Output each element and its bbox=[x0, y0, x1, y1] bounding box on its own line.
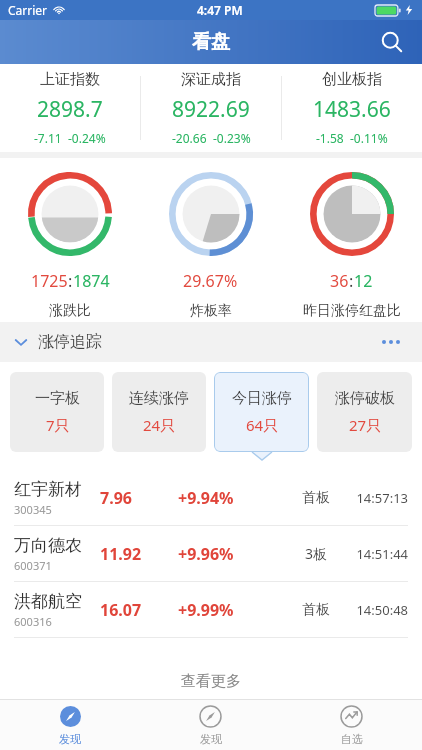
button[interactable]: 红宇新材 bbox=[14, 470, 408, 525]
staticText: 一字板 bbox=[35, 389, 80, 408]
staticText: 36 bbox=[330, 270, 349, 292]
staticText: : bbox=[68, 270, 73, 292]
staticText: -0.23% bbox=[213, 130, 251, 146]
button[interactable]: 涨停追踪 bbox=[14, 322, 408, 362]
staticText: 24只 bbox=[143, 415, 176, 435]
button[interactable]: 1725 bbox=[0, 170, 140, 322]
staticText: 发现 bbox=[59, 732, 81, 746]
staticText: -1.58 bbox=[316, 130, 344, 146]
button[interactable]: 发现 bbox=[140, 700, 281, 750]
staticText: 万向德农 bbox=[14, 535, 82, 556]
staticText: 创业板指 bbox=[322, 70, 382, 89]
staticText: -7.11 bbox=[34, 130, 62, 146]
staticText: 涨停破板 bbox=[335, 389, 395, 408]
staticText: 29.67% bbox=[183, 270, 238, 292]
staticText: 今日涨停 bbox=[232, 389, 292, 408]
staticText: 12 bbox=[354, 270, 373, 292]
staticText: 4:47 PM bbox=[197, 2, 243, 18]
button[interactable]: 深证成指 bbox=[141, 64, 281, 152]
staticText: 洪都航空 bbox=[14, 591, 82, 612]
button[interactable]: 自选 bbox=[281, 700, 422, 750]
staticText: 首板 bbox=[292, 601, 340, 619]
staticText: 1874 bbox=[73, 270, 110, 292]
staticText: 1483.66 bbox=[313, 95, 391, 124]
staticText: : bbox=[349, 270, 354, 292]
staticText: Carrier bbox=[8, 2, 48, 18]
staticText: +9.99% bbox=[178, 599, 292, 621]
staticText: 涨停追踪 bbox=[38, 332, 102, 352]
button[interactable]: 36 bbox=[281, 170, 422, 322]
staticText: 11.92 bbox=[100, 543, 178, 565]
staticText: 7.96 bbox=[100, 487, 178, 509]
button[interactable]: 洪都航空 bbox=[14, 582, 408, 637]
staticText: 连续涨停 bbox=[129, 389, 189, 408]
staticText: 红宇新材 bbox=[14, 479, 82, 500]
button[interactable]: 涨停破板 bbox=[317, 372, 412, 452]
button[interactable]: 创业板指 bbox=[282, 64, 422, 152]
staticText: 14:57:13 bbox=[340, 489, 408, 507]
staticText: 14:51:44 bbox=[340, 545, 408, 563]
button[interactable]: 29.67% bbox=[140, 170, 281, 322]
staticText: 发现 bbox=[200, 732, 222, 746]
button[interactable]: 发现 bbox=[0, 700, 140, 750]
staticText: 16.07 bbox=[100, 599, 178, 621]
staticText: 1725 bbox=[31, 270, 68, 292]
button[interactable]: 一字板 bbox=[10, 372, 104, 452]
staticText: 8922.69 bbox=[172, 95, 250, 124]
staticText: 300345 bbox=[14, 502, 52, 517]
staticText: 深证成指 bbox=[181, 70, 241, 89]
staticText: 2898.7 bbox=[37, 95, 103, 124]
staticText: 64只 bbox=[246, 415, 279, 435]
button[interactable]: More options bbox=[374, 325, 408, 359]
staticText: 昨日涨停红盘比 bbox=[303, 302, 401, 320]
staticText: 600371 bbox=[14, 558, 52, 573]
staticText: 上证指数 bbox=[40, 70, 100, 89]
button[interactable]: 查看更多 bbox=[0, 663, 422, 699]
button[interactable]: 连续涨停 bbox=[112, 372, 206, 452]
staticText: 炸板率 bbox=[190, 302, 232, 320]
staticText: 14:50:48 bbox=[340, 601, 408, 619]
button[interactable]: 上证指数 bbox=[0, 64, 140, 152]
staticText: 27只 bbox=[349, 415, 382, 435]
staticText: 查看更多 bbox=[181, 672, 241, 691]
button[interactable]: 今日涨停 bbox=[214, 372, 309, 452]
button[interactable]: 万向德农 bbox=[14, 526, 408, 581]
staticText: -20.66 bbox=[172, 130, 207, 146]
staticText: 涨跌比 bbox=[49, 302, 91, 320]
staticText: 自选 bbox=[341, 732, 363, 746]
staticText: 7只 bbox=[46, 415, 70, 435]
staticText: +9.94% bbox=[178, 487, 292, 509]
staticText: +9.96% bbox=[178, 543, 292, 565]
staticText: 看盘 bbox=[192, 30, 230, 54]
staticText: 600316 bbox=[14, 614, 52, 629]
staticText: -0.11% bbox=[350, 130, 388, 146]
button[interactable]: Search bbox=[372, 22, 412, 62]
staticText: 3板 bbox=[292, 544, 340, 563]
staticText: -0.24% bbox=[68, 130, 106, 146]
staticText: 首板 bbox=[292, 489, 340, 507]
